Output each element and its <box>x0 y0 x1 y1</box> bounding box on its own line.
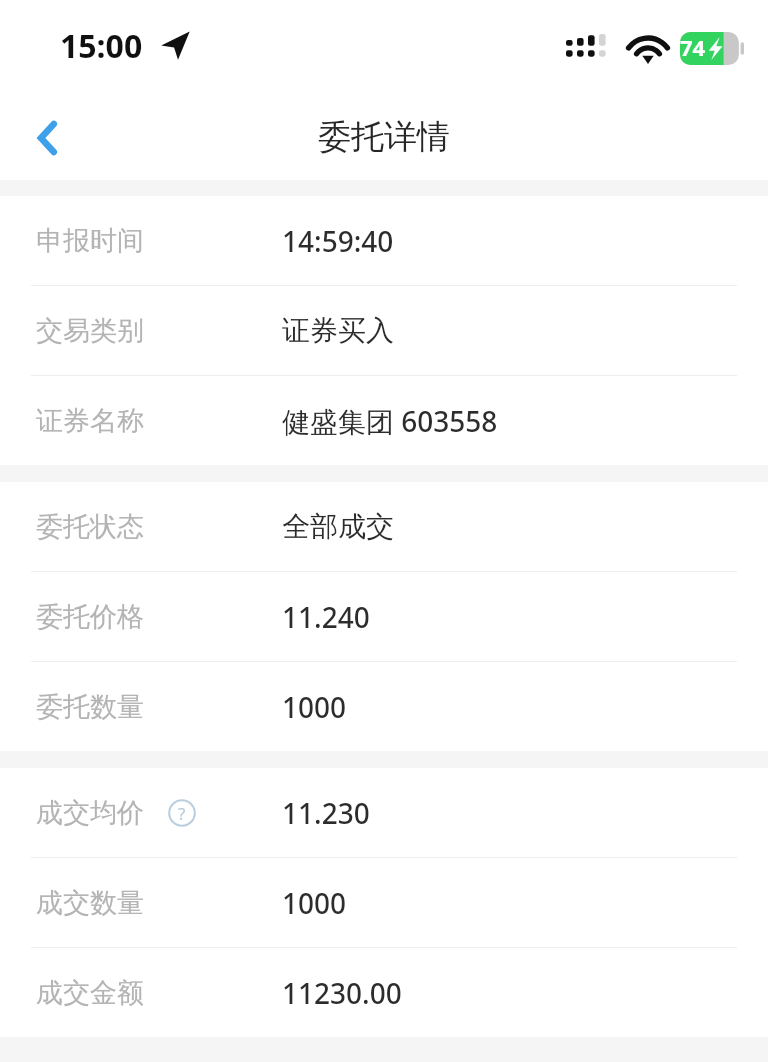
button[interactable]: 证券名称 <box>0 376 768 465</box>
button[interactable]: 成交金额 <box>0 948 768 1037</box>
button[interactable]: 委托数量 <box>0 662 768 751</box>
staticText: 成交均价 <box>36 796 144 830</box>
button[interactable]: 委托价格 <box>0 572 768 661</box>
button[interactable]: 成交均价 <box>0 768 768 857</box>
staticText: 成交金额 <box>36 976 144 1010</box>
staticText: 委托数量 <box>36 690 144 724</box>
button[interactable]: 委托状态 <box>0 482 768 571</box>
staticText: 74 <box>680 32 706 62</box>
staticText: 11230.00 <box>282 974 402 1012</box>
button[interactable]: Help about average price <box>168 799 196 827</box>
staticText: 11.240 <box>282 598 370 636</box>
staticText: 委托价格 <box>36 600 144 634</box>
button[interactable]: 申报时间 <box>0 196 768 285</box>
staticText: 14:59:40 <box>282 222 394 260</box>
staticText: 15:00 <box>60 24 143 68</box>
button[interactable]: 交易类别 <box>0 286 768 375</box>
staticText: 11.230 <box>282 794 370 832</box>
staticText: 全部成交 <box>282 509 394 544</box>
staticText: 委托状态 <box>36 510 144 544</box>
staticText: 委托详情 <box>318 116 450 158</box>
staticText: ? <box>178 802 186 825</box>
staticText: 证券名称 <box>36 404 144 438</box>
button[interactable]: Back <box>16 110 72 166</box>
staticText: 证券买入 <box>282 313 394 348</box>
staticText: 申报时间 <box>36 224 144 258</box>
staticText: 1000 <box>282 688 347 726</box>
staticText: 交易类别 <box>36 314 144 348</box>
button[interactable]: 成交数量 <box>0 858 768 947</box>
staticText: 成交数量 <box>36 886 144 920</box>
staticText: 健盛集团 603558 <box>282 402 498 440</box>
staticText: 1000 <box>282 884 347 922</box>
